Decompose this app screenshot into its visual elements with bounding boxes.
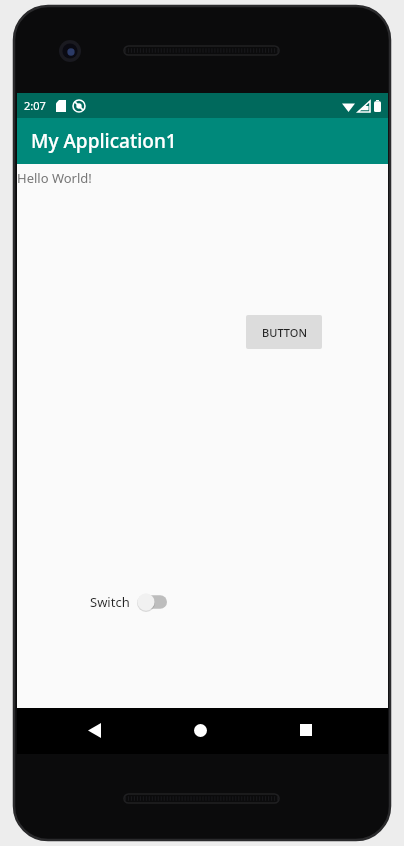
staticText: My Application1 [31,128,177,154]
staticText: Hello World! [17,169,92,187]
staticText: Switch [90,593,130,611]
staticText: BUTTON [262,325,307,340]
button[interactable]: Back [81,717,107,743]
staticText: 2:07 [24,98,46,113]
button[interactable]: Switch [90,593,167,611]
button[interactable]: Home [187,717,213,743]
button[interactable]: BUTTON [246,315,322,349]
button[interactable]: Recent apps [293,717,319,743]
